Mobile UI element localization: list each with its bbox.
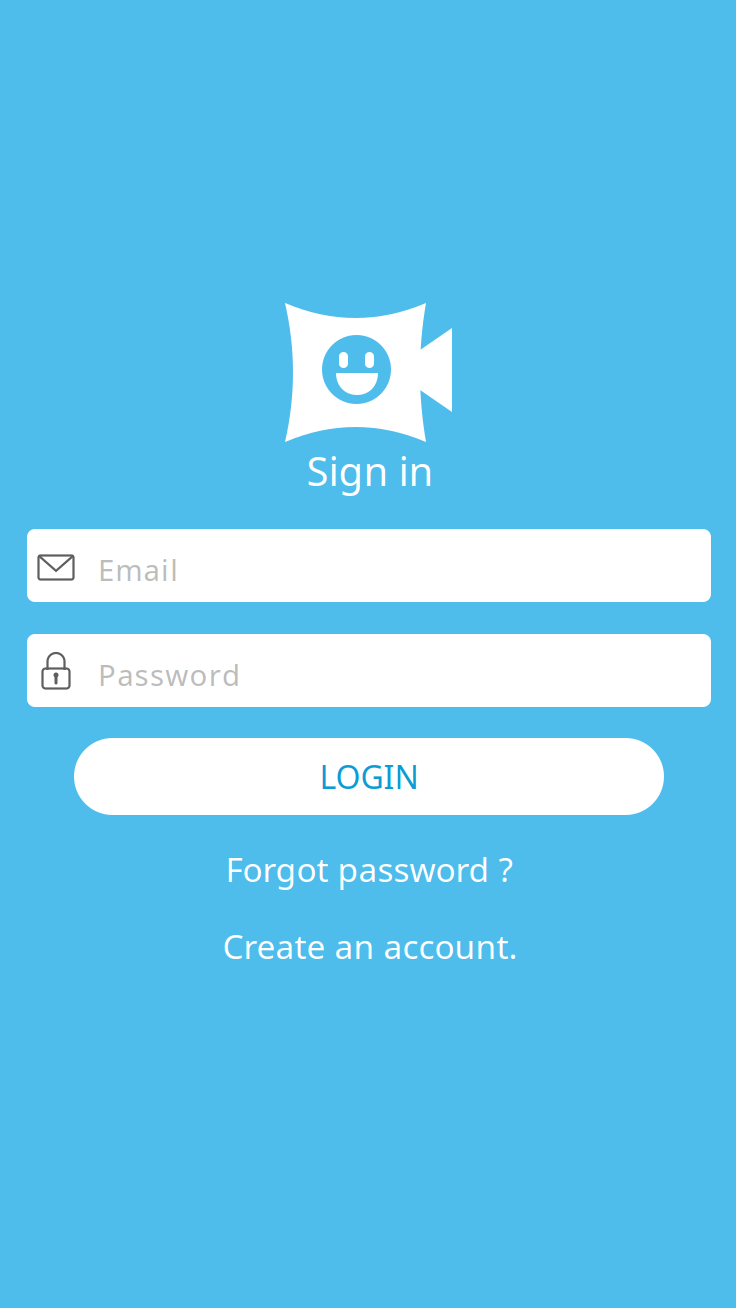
button[interactable]: LOGIN (74, 738, 664, 815)
staticText: Forgot password ? (225, 847, 512, 891)
staticText: Email (98, 550, 187, 589)
staticText: LOGIN (319, 755, 418, 798)
staticText: Sign in (306, 444, 433, 497)
button[interactable]: Forgot password ? (1, 846, 736, 892)
button[interactable]: Password (27, 634, 711, 707)
staticText: Create an account. (222, 924, 517, 968)
staticText: Password (98, 655, 249, 694)
button[interactable]: Email (27, 529, 711, 602)
button[interactable]: Create an account. (2, 923, 736, 969)
